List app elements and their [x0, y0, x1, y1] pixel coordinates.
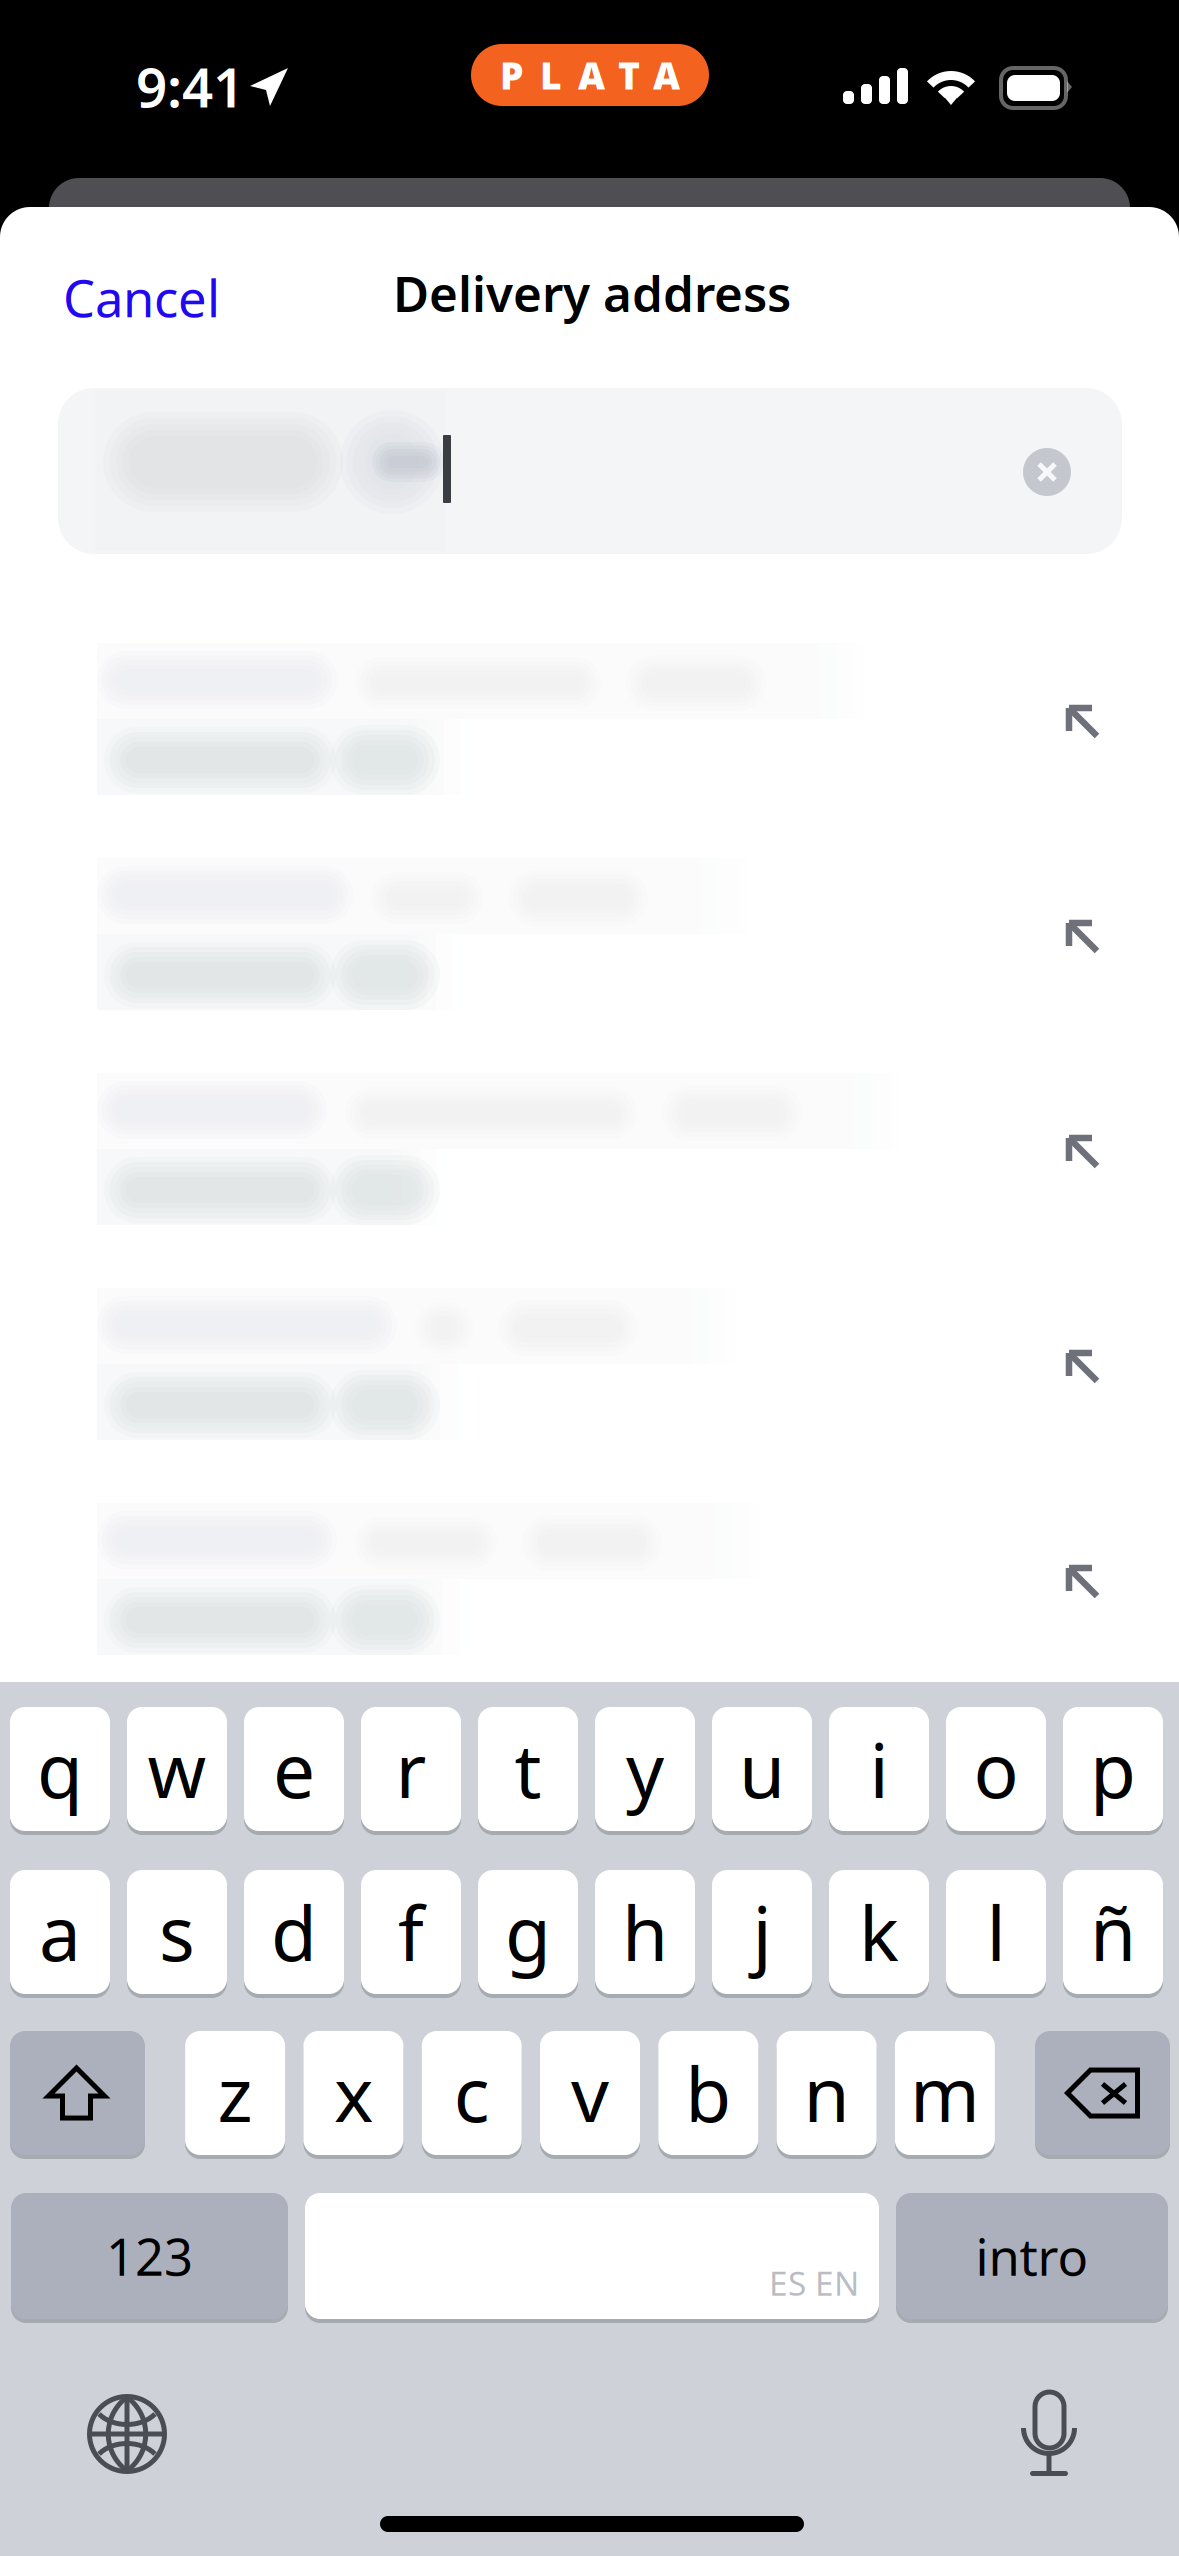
button[interactable]: o [946, 1707, 1046, 1835]
button[interactable]: n [777, 2031, 877, 2159]
button[interactable]: r [361, 1707, 461, 1835]
button[interactable]: t [478, 1707, 578, 1835]
button[interactable]: 123 [11, 2193, 288, 2323]
button[interactable] [0, 643, 1179, 858]
staticText: s [159, 1882, 195, 1982]
staticText: z [218, 2043, 253, 2143]
button[interactable]: e [244, 1707, 344, 1835]
staticText: q [37, 1719, 83, 1819]
button[interactable]: Shift [10, 2031, 145, 2159]
staticText: n [804, 2043, 850, 2143]
button[interactable]: q [10, 1707, 110, 1835]
button[interactable]: intro [896, 2193, 1168, 2323]
staticText: x [334, 2043, 373, 2143]
button[interactable]: d [244, 1870, 344, 1998]
button[interactable]: Delete [1035, 2031, 1170, 2159]
staticText: 123 [106, 2222, 193, 2290]
staticText: c [454, 2043, 490, 2143]
button[interactable]: c [422, 2031, 522, 2159]
staticText: l [986, 1882, 1005, 1982]
button[interactable]: y [595, 1707, 695, 1835]
staticText: r [395, 1719, 426, 1819]
button[interactable]: u [712, 1707, 812, 1835]
staticText: ES EN [769, 2261, 859, 2305]
button[interactable]: j [712, 1870, 812, 1998]
staticText: a [39, 1882, 81, 1982]
button[interactable]: z [185, 2031, 285, 2159]
staticText: d [271, 1882, 317, 1982]
button[interactable]: v [540, 2031, 640, 2159]
staticText: y [626, 1719, 664, 1819]
button[interactable]: h [595, 1870, 695, 1998]
staticText: h [622, 1882, 668, 1982]
button[interactable]: f [361, 1870, 461, 1998]
staticText: ñ [1090, 1882, 1136, 1982]
staticText: PLATA [500, 50, 680, 100]
staticText: Cancel [63, 264, 220, 331]
button[interactable]: s [127, 1870, 227, 1998]
button[interactable]: l [946, 1870, 1046, 1998]
staticText: w [147, 1719, 206, 1819]
button[interactable]: Dictate [1021, 2392, 1077, 2478]
staticText: o [973, 1719, 1018, 1819]
button[interactable]: Space [305, 2193, 879, 2323]
staticText: t [514, 1719, 541, 1819]
staticText: intro [975, 2222, 1088, 2290]
button[interactable]: w [127, 1707, 227, 1835]
staticText: v [571, 2043, 609, 2143]
staticText: m [910, 2043, 980, 2143]
button[interactable]: a [10, 1870, 110, 1998]
button[interactable]: Cancel [63, 264, 220, 331]
button[interactable]: b [658, 2031, 758, 2159]
button[interactable] [0, 1288, 1179, 1503]
button[interactable]: x [303, 2031, 403, 2159]
button[interactable]: g [478, 1870, 578, 1998]
staticText: j [752, 1882, 771, 1982]
staticText: f [398, 1882, 424, 1982]
button[interactable]: i [829, 1707, 929, 1835]
button[interactable]: ñ [1063, 1870, 1163, 1998]
button[interactable]: Clear text [1023, 448, 1071, 496]
staticText: Delivery address [393, 260, 791, 325]
staticText: b [685, 2043, 731, 2143]
button[interactable]: p [1063, 1707, 1163, 1835]
staticText: p [1090, 1719, 1136, 1819]
button[interactable]: m [895, 2031, 995, 2159]
button[interactable] [0, 1073, 1179, 1288]
button[interactable] [0, 1503, 1179, 1718]
button[interactable] [0, 858, 1179, 1073]
staticText: e [273, 1719, 315, 1819]
button[interactable]: k [829, 1870, 929, 1998]
staticText: 9:41 [136, 50, 244, 123]
staticText: u [739, 1719, 785, 1819]
staticText: k [859, 1882, 899, 1982]
staticText: i [869, 1719, 888, 1819]
button[interactable]: Change keyboard [87, 2394, 167, 2474]
staticText: g [505, 1882, 551, 1982]
